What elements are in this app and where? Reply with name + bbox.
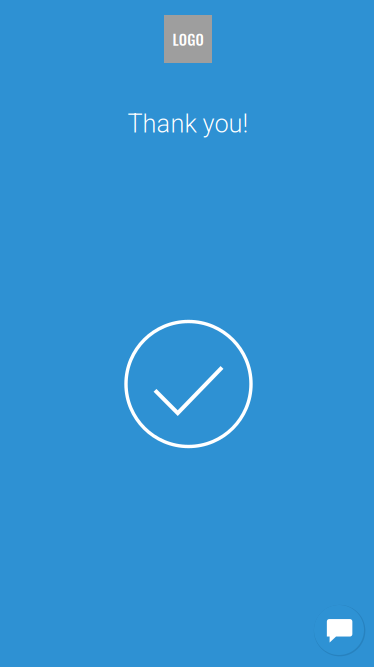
staticText: Thank you! [127, 109, 248, 139]
staticText: LOGO [173, 28, 203, 50]
button[interactable]: Chat [313, 604, 365, 656]
